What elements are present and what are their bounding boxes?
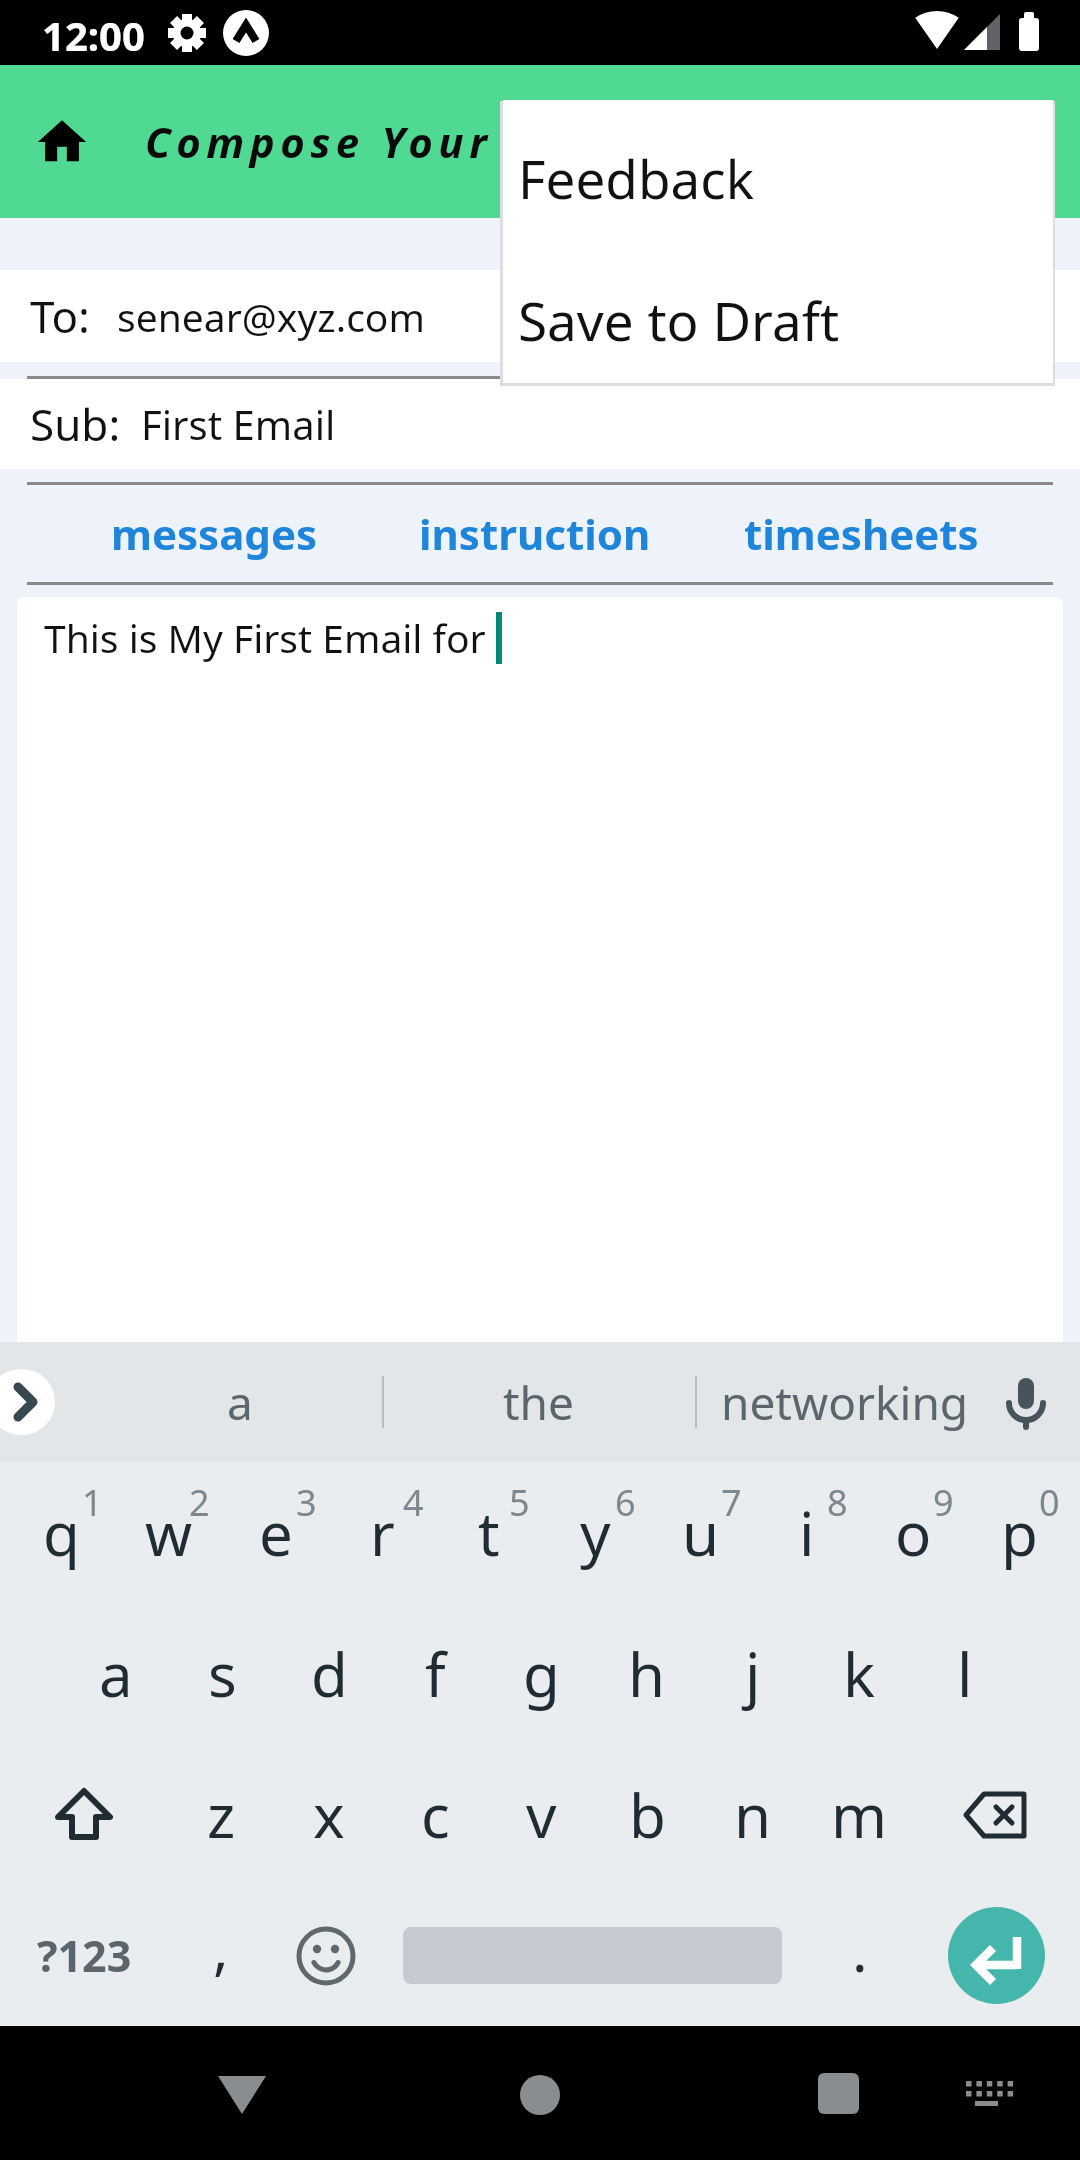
staticText: senear@xyz.com [117, 290, 425, 343]
staticText: 4 [403, 1478, 424, 1527]
button[interactable]: This is My First Email for [17, 597, 1063, 1342]
button[interactable]: k [806, 1603, 912, 1744]
staticText: Compose Your Mail [145, 113, 618, 170]
button[interactable]: p [966, 1462, 1072, 1603]
button[interactable]: l [912, 1603, 1018, 1744]
button[interactable]: b [594, 1744, 700, 1885]
button[interactable] [912, 1885, 1080, 2026]
button[interactable]: q [8, 1462, 115, 1603]
button[interactable]: x [275, 1744, 382, 1885]
staticText: y [580, 1492, 611, 1574]
staticText: 7 [721, 1478, 742, 1527]
button[interactable]: ?123 [0, 1885, 168, 2026]
staticText: e [259, 1492, 293, 1574]
staticText: l [957, 1633, 973, 1715]
button[interactable]: networking [695, 1342, 995, 1462]
staticText: q [43, 1492, 80, 1574]
staticText: 2 [189, 1478, 210, 1527]
staticText: x [313, 1774, 345, 1856]
staticText: f [425, 1633, 446, 1715]
staticText: b [629, 1774, 666, 1856]
staticText: s [208, 1633, 237, 1715]
staticText: j [745, 1633, 761, 1715]
staticText: h [628, 1633, 666, 1715]
staticText: r [370, 1492, 395, 1574]
staticText: To: [30, 286, 90, 346]
button[interactable] [0, 1744, 168, 1885]
staticText: Save to Draft [518, 284, 840, 356]
staticText: p [1001, 1492, 1038, 1574]
button[interactable]: r [329, 1462, 436, 1603]
staticText: Feedback [518, 142, 754, 214]
staticText: 3 [296, 1478, 317, 1527]
staticText: o [895, 1492, 932, 1574]
button[interactable]: a [79, 1342, 401, 1462]
button[interactable] [0, 2026, 360, 2160]
button[interactable]: u [648, 1462, 754, 1603]
button[interactable]: Sub: [0, 379, 1080, 469]
staticText: c [421, 1774, 450, 1856]
button[interactable]: t [436, 1462, 542, 1603]
button[interactable]: To: [0, 270, 1080, 362]
button[interactable]: . [807, 1885, 912, 2026]
staticText: i [799, 1492, 815, 1574]
staticText: 0 [1039, 1478, 1060, 1527]
button[interactable]: g [488, 1603, 594, 1744]
button[interactable]: h [594, 1603, 700, 1744]
button[interactable] [0, 1369, 55, 1435]
staticText: ?123 [37, 1926, 132, 1985]
staticText: 5 [509, 1478, 530, 1527]
staticText: n [734, 1774, 772, 1856]
staticText: 1 [82, 1478, 103, 1527]
button[interactable]: a [62, 1603, 169, 1744]
button[interactable]: n [700, 1744, 806, 1885]
staticText: v [526, 1774, 557, 1856]
button[interactable]: v [488, 1744, 594, 1885]
button[interactable]: , [168, 1885, 273, 2026]
staticText: a [227, 1371, 253, 1434]
button[interactable]: d [276, 1603, 382, 1744]
button[interactable]: o [860, 1462, 966, 1603]
staticText: k [843, 1633, 876, 1715]
button[interactable]: s [169, 1603, 276, 1744]
staticText: 9 [933, 1478, 954, 1527]
button[interactable] [1004, 1375, 1048, 1435]
button[interactable]: m [806, 1744, 912, 1885]
staticText: 12:00 [42, 8, 145, 62]
button[interactable] [360, 2026, 720, 2160]
staticText: g [523, 1633, 560, 1715]
button[interactable]: the [382, 1342, 695, 1462]
button[interactable]: f [382, 1603, 488, 1744]
staticText: . [852, 1910, 868, 1989]
button[interactable]: Feedback [503, 100, 1053, 256]
staticText: d [311, 1633, 348, 1715]
staticText: w [145, 1492, 193, 1574]
button[interactable]: messages [111, 485, 318, 582]
button[interactable]: c [382, 1744, 488, 1885]
button[interactable]: instruction [419, 485, 651, 582]
button[interactable]: e [222, 1462, 329, 1603]
button[interactable]: w [115, 1462, 222, 1603]
staticText: 6 [615, 1478, 636, 1527]
staticText: timesheets [744, 505, 979, 562]
staticText: u [682, 1492, 720, 1574]
staticText: the [503, 1371, 574, 1434]
button[interactable]: i [754, 1462, 860, 1603]
button[interactable]: z [168, 1744, 275, 1885]
button[interactable] [403, 1885, 782, 2026]
button[interactable]: y [542, 1462, 648, 1603]
button[interactable] [720, 2026, 1080, 2160]
staticText: z [207, 1774, 236, 1856]
staticText: networking [721, 1371, 969, 1434]
button[interactable] [273, 1885, 378, 2026]
button[interactable]: Save to Draft [503, 256, 1053, 383]
staticText: t [478, 1492, 500, 1574]
staticText: This is My First Email for [44, 611, 496, 664]
button[interactable]: j [700, 1603, 806, 1744]
button[interactable] [912, 1744, 1080, 1885]
staticText: a [99, 1633, 133, 1715]
staticText: instruction [419, 505, 651, 562]
staticText: Sub: [30, 394, 121, 454]
button[interactable]: timesheets [744, 485, 979, 582]
button[interactable]: Compose Your Mail [0, 65, 1080, 218]
